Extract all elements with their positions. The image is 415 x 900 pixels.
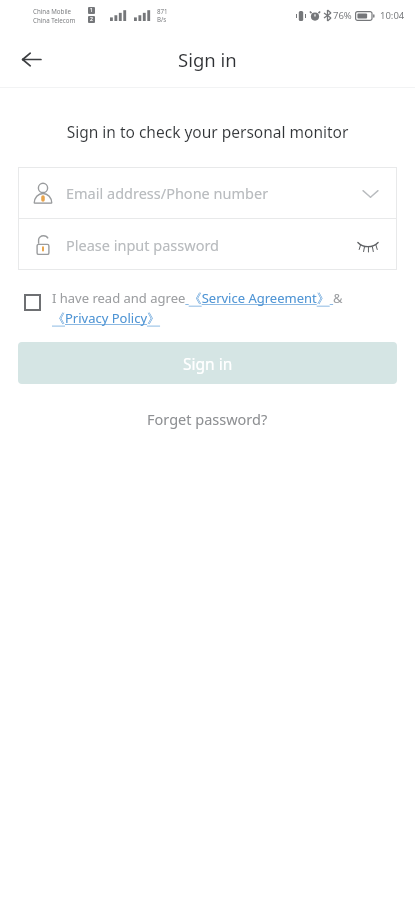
button[interactable]: Agree to terms (21, 291, 43, 313)
button[interactable]: Please input password (18, 219, 397, 270)
staticText: Forget password? (147, 409, 268, 429)
button[interactable]: Back (8, 36, 54, 82)
staticText: 10:04 (380, 9, 405, 22)
staticText: Sign in (183, 353, 233, 374)
button[interactable]: Forget password? (135, 405, 280, 433)
staticText: 76% (333, 9, 352, 22)
staticText: 1 (90, 7, 93, 14)
staticText: I have read and agree 《Service Agreement… (52, 289, 397, 327)
staticText: China Telecom (33, 16, 76, 24)
staticText: 871 (157, 7, 168, 15)
button[interactable]: Email address/Phone number (18, 167, 397, 218)
button[interactable]: I have read and agree 《Service Agreement… (52, 289, 397, 327)
button[interactable]: Show accounts (357, 180, 383, 206)
staticText: China Mobile (33, 7, 72, 15)
staticText: B/s (157, 15, 167, 23)
staticText: Email address/Phone number (66, 183, 357, 203)
staticText: 2 (90, 16, 93, 23)
button[interactable]: Show password (353, 230, 383, 260)
staticText: Please input password (66, 235, 353, 255)
button[interactable]: Sign in (18, 342, 397, 384)
staticText: Sign in (178, 47, 237, 72)
staticText: Sign in to check your personal monitor (0, 121, 415, 142)
